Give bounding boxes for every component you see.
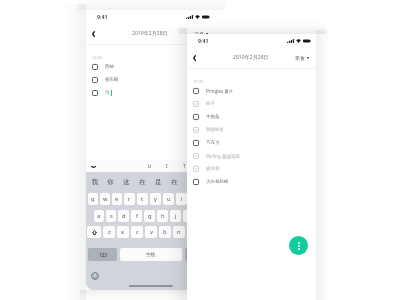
- staticText: 是: [155, 178, 162, 186]
- button[interactable]: 可: [86, 86, 215, 99]
- staticText: 牛肉条: [206, 114, 220, 120]
- button[interactable]: 选择: [194, 28, 208, 39]
- staticText: 在: [171, 178, 178, 186]
- button[interactable]: Format U: [144, 160, 155, 172]
- staticText: a: [97, 212, 101, 220]
- button[interactable]: Pringles 薯片: [187, 84, 316, 97]
- staticText: h: [161, 212, 165, 220]
- staticText: 你: [107, 178, 114, 186]
- button[interactable]: g: [144, 210, 155, 222]
- button[interactable]: 西柚: [86, 60, 215, 73]
- button[interactable]: i: [176, 193, 187, 205]
- button[interactable]: u: [163, 193, 174, 205]
- staticText: U: [148, 163, 152, 169]
- button[interactable]: f: [131, 210, 142, 222]
- button[interactable]: b: [159, 226, 171, 238]
- button[interactable]: 威化饼: [187, 162, 316, 175]
- button[interactable]: k: [183, 210, 194, 222]
- button[interactable]: Verling 蔓越莓果: [187, 149, 316, 162]
- button[interactable]: z: [103, 226, 115, 238]
- button[interactable]: w: [100, 193, 110, 205]
- staticText: s: [110, 212, 113, 220]
- staticText: 空格: [146, 252, 156, 258]
- staticText: 2019年2月28日: [132, 30, 168, 37]
- button[interactable]: v: [145, 226, 157, 238]
- staticText: 可: [105, 90, 110, 96]
- button[interactable]: r: [124, 193, 135, 205]
- staticText: 甜辣鱿鱼: [206, 127, 224, 133]
- button[interactable]: 不: [182, 172, 198, 191]
- button[interactable]: a: [94, 210, 104, 222]
- button[interactable]: Format B: [197, 160, 208, 172]
- button[interactable]: Return: [185, 248, 214, 261]
- button[interactable]: 甜辣鱿鱼: [187, 123, 316, 136]
- button[interactable]: 123: [88, 248, 117, 261]
- button[interactable]: n: [173, 226, 185, 238]
- button[interactable]: Format I: [161, 160, 172, 172]
- button[interactable]: 空格: [120, 248, 182, 261]
- button[interactable]: s: [106, 210, 116, 222]
- staticText: Pringles 薯片: [206, 88, 234, 94]
- button[interactable]: 你: [103, 172, 118, 191]
- button[interactable]: 我: [88, 172, 103, 191]
- staticText: i: [181, 195, 183, 203]
- button[interactable]: 了: [198, 172, 214, 191]
- staticText: 2019年2月28日: [233, 54, 269, 61]
- button[interactable]: Shift: [87, 226, 101, 238]
- button[interactable]: h: [157, 210, 168, 222]
- button[interactable]: 巧克力: [187, 136, 316, 149]
- staticText: 12:33: [193, 79, 204, 85]
- staticText: j: [175, 212, 177, 220]
- button[interactable]: Emoji: [91, 272, 99, 280]
- button[interactable]: Back: [187, 51, 201, 65]
- button[interactable]: 柚子: [187, 97, 316, 110]
- staticText: 9:41: [198, 37, 209, 44]
- button[interactable]: e: [112, 193, 122, 205]
- staticText: c: [136, 228, 139, 236]
- staticText: 不: [187, 178, 194, 186]
- button[interactable]: d: [118, 210, 129, 222]
- button[interactable]: 这: [118, 172, 134, 191]
- button[interactable]: y: [150, 193, 161, 205]
- staticText: I: [166, 163, 168, 169]
- button[interactable]: Format T: [179, 160, 190, 172]
- button[interactable]: 零食: [295, 52, 309, 63]
- staticText: f: [136, 212, 138, 220]
- staticText: d: [122, 212, 126, 220]
- staticText: 零食: [295, 55, 305, 61]
- staticText: 西柚: [105, 64, 114, 70]
- button[interactable]: Hide keyboard: [89, 162, 98, 171]
- button[interactable]: 在: [166, 172, 182, 191]
- staticText: Verling 蔓越莓果: [206, 153, 241, 159]
- staticText: t: [141, 195, 144, 203]
- button[interactable]: 是: [150, 172, 166, 191]
- staticText: y: [154, 195, 157, 203]
- staticText: z: [108, 228, 111, 236]
- button[interactable]: x: [117, 226, 129, 238]
- staticText: 这: [123, 178, 130, 186]
- staticText: x: [121, 228, 125, 236]
- button[interactable]: c: [131, 226, 143, 238]
- button[interactable]: More options: [289, 236, 308, 255]
- staticText: 柚子: [206, 101, 215, 107]
- staticText: q: [91, 195, 95, 203]
- button[interactable]: t: [137, 193, 148, 205]
- staticText: 在: [139, 178, 146, 186]
- button[interactable]: j: [170, 210, 181, 222]
- button[interactable]: 大白兔奶糖: [187, 175, 316, 188]
- button[interactable]: q: [88, 193, 98, 205]
- staticText: v: [150, 228, 153, 236]
- staticText: u: [167, 195, 171, 203]
- button[interactable]: 在: [134, 172, 150, 191]
- staticText: e: [115, 195, 119, 203]
- button[interactable]: 牛肉条: [187, 110, 316, 123]
- button[interactable]: 蜜石榴: [86, 73, 215, 86]
- button[interactable]: Back: [86, 27, 100, 41]
- staticText: 12:33: [92, 55, 103, 61]
